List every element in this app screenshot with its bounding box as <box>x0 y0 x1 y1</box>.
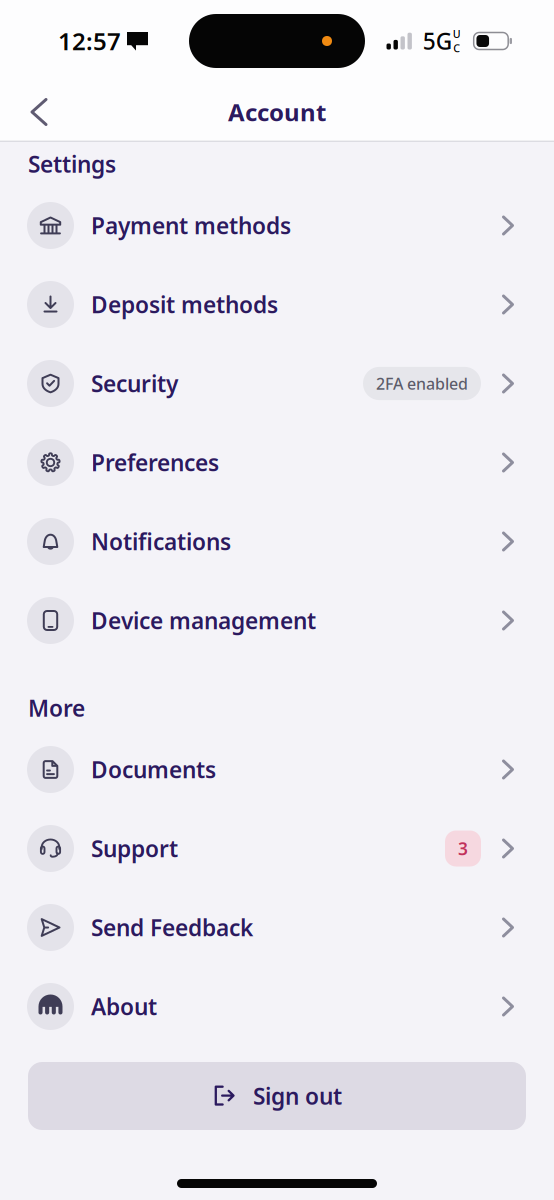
button[interactable]: Send Feedback <box>0 888 554 967</box>
button[interactable]: Back <box>13 86 65 138</box>
staticText: Device management <box>91 605 316 635</box>
staticText: 3 <box>458 837 468 860</box>
staticText: Send Feedback <box>91 912 253 942</box>
button[interactable]: Preferences <box>0 423 554 502</box>
button[interactable]: Notifications <box>0 502 554 581</box>
staticText: Security <box>91 368 178 398</box>
staticText: Documents <box>91 754 216 784</box>
staticText: Account <box>228 96 326 128</box>
button[interactable]: Sign out <box>0 1062 554 1130</box>
button[interactable]: Payment methods <box>0 186 554 265</box>
staticText: Payment methods <box>91 210 291 240</box>
staticText: 2FA enabled <box>376 373 468 394</box>
staticText: Support <box>91 833 178 863</box>
staticText: C <box>453 41 460 55</box>
staticText: 5G <box>423 26 452 56</box>
button[interactable]: Security <box>0 344 554 423</box>
staticText: Notifications <box>91 526 231 556</box>
staticText: 12:57 <box>58 25 121 57</box>
staticText: U <box>453 27 461 41</box>
staticText: Sign out <box>253 1081 342 1111</box>
staticText: Deposit methods <box>91 289 278 319</box>
staticText: More <box>28 693 85 723</box>
staticText: About <box>91 991 157 1021</box>
staticText: Settings <box>28 149 116 179</box>
button[interactable]: Device management <box>0 581 554 660</box>
button[interactable]: Documents <box>0 730 554 809</box>
button[interactable]: About <box>0 967 554 1046</box>
staticText: Preferences <box>91 447 219 477</box>
button[interactable]: Deposit methods <box>0 265 554 344</box>
button[interactable]: Support <box>0 809 554 888</box>
